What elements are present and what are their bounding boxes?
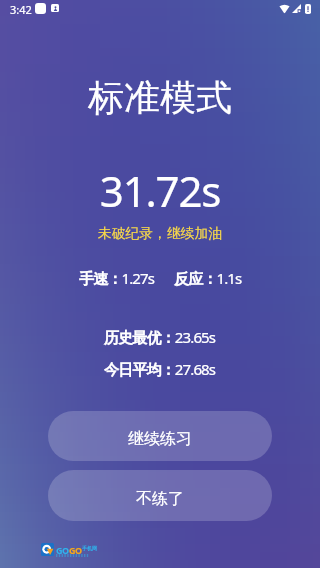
other: Battery — [305, 4, 311, 14]
staticText: 31.72s — [0, 162, 320, 219]
staticText: 今日平均：27.68s — [104, 359, 216, 379]
staticText: 继续练习 — [128, 429, 192, 449]
button[interactable]: 不练了 — [48, 470, 272, 521]
staticText: 3:42 — [10, 2, 32, 17]
staticText: 反应：1.1s — [174, 268, 242, 288]
staticText: 历史最优：23.65s — [104, 327, 216, 347]
staticText: 标准模式 — [0, 75, 320, 120]
staticText: 手速：1.27s — [79, 268, 155, 288]
staticText: 不练了 — [136, 489, 184, 509]
other: Wi-Fi — [279, 4, 290, 13]
button[interactable]: 继续练习 — [48, 411, 272, 461]
staticText: GO — [56, 544, 69, 556]
other: Notification — [35, 3, 46, 14]
staticText: 未破纪录，继续加油 — [0, 225, 320, 242]
staticText: GO — [69, 544, 82, 556]
other: Signal — [292, 4, 301, 13]
staticText: 手机网 — [82, 545, 97, 551]
